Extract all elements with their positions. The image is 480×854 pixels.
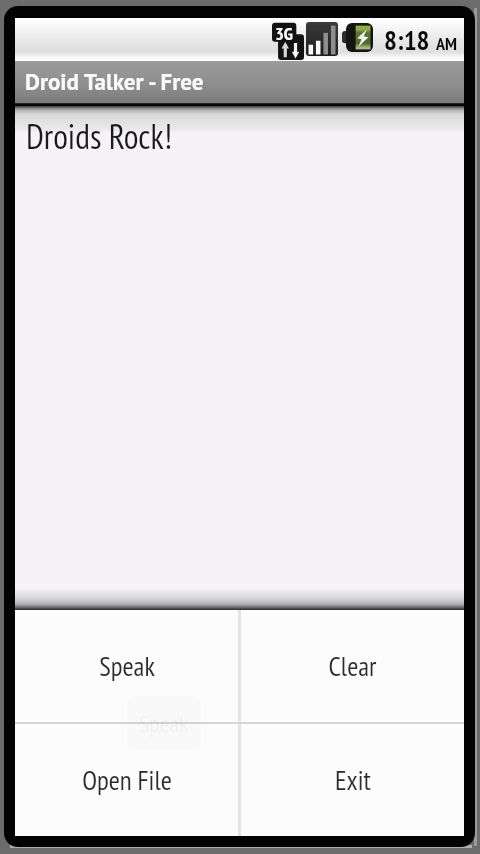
staticText: Droid Talker - Free (25, 67, 204, 97)
staticText: 8:18 (384, 23, 430, 58)
staticText: Speak (99, 649, 155, 684)
staticText: Droids Rock! (26, 114, 173, 158)
staticText: Clear (328, 649, 377, 684)
button[interactable]: Open File (15, 724, 238, 836)
staticText: Speak (139, 708, 189, 739)
button[interactable]: Clear (241, 610, 464, 722)
button[interactable]: Exit (241, 724, 464, 836)
staticText: AM (436, 32, 457, 55)
button[interactable]: Droids Rock! (15, 103, 464, 610)
staticText: 3G (272, 22, 296, 45)
button[interactable]: Speak (15, 610, 238, 722)
staticText: Exit (335, 763, 371, 798)
staticText: Open File (82, 763, 172, 798)
other: Mobile data 3G (272, 22, 304, 60)
